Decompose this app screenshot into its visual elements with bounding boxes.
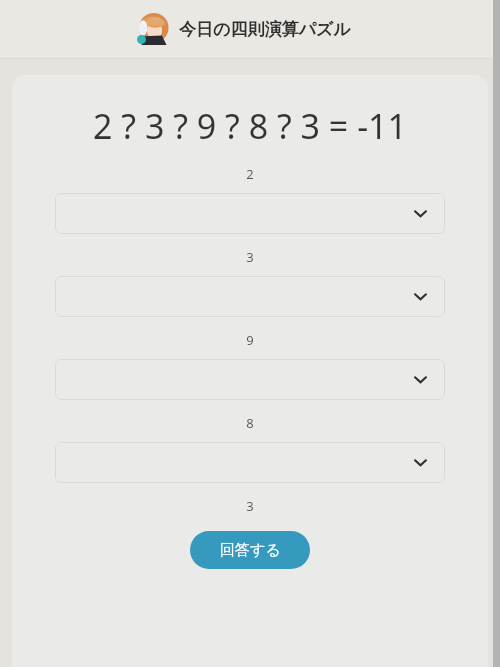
staticText: 2 ? 3 ? 9 ? 8 ? 3 = -11 [93, 103, 407, 149]
staticText: 2 [246, 165, 254, 183]
staticText: 8 [246, 414, 254, 432]
staticText: 回答する [220, 541, 281, 560]
button[interactable]: 演算子を選択 [55, 442, 445, 483]
staticText: 今日の四則演算パズル [179, 19, 351, 40]
staticText: 3 [246, 497, 254, 515]
button[interactable]: 回答する [190, 531, 310, 569]
staticText: 3 [246, 248, 254, 266]
staticText: 9 [246, 331, 254, 349]
button[interactable]: 演算子を選択 [55, 276, 445, 317]
button[interactable]: 演算子を選択 [55, 193, 445, 234]
button[interactable]: 演算子を選択 [55, 359, 445, 400]
